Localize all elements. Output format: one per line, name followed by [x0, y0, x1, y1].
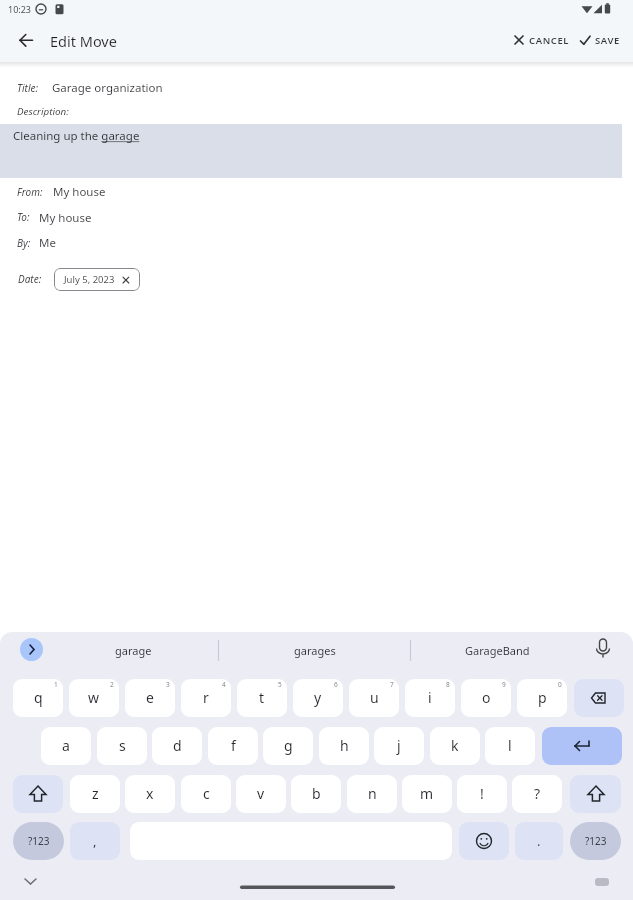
staticText: ?123 [585, 834, 607, 848]
staticText: q [34, 688, 43, 707]
staticText: d [173, 736, 182, 755]
button[interactable]: v [236, 775, 286, 813]
staticText: u [370, 688, 379, 707]
button[interactable]: h [319, 727, 369, 765]
button[interactable]: a [41, 727, 91, 765]
staticText: f [231, 736, 236, 755]
button[interactable]: j [374, 727, 424, 765]
button[interactable] [570, 775, 621, 813]
staticText: a [62, 736, 70, 755]
staticText: t [259, 688, 265, 707]
button[interactable]: g [263, 727, 313, 765]
staticText: 2 [110, 680, 114, 689]
staticText: z [92, 784, 99, 803]
staticText: v [257, 784, 265, 803]
staticText: 8 [446, 680, 450, 689]
staticText: r [203, 688, 209, 707]
staticText: b [312, 784, 321, 803]
button[interactable]: x [125, 775, 175, 813]
button[interactable]: ? [512, 775, 562, 813]
staticText: ! [480, 784, 484, 803]
button[interactable]: w [69, 679, 119, 717]
staticText: GarageBand [465, 643, 530, 658]
button[interactable]: July 5, 2023 [54, 268, 140, 291]
staticText: Description: [17, 105, 69, 118]
button[interactable] [20, 638, 43, 661]
button[interactable]: n [347, 775, 397, 813]
staticText: h [340, 736, 349, 755]
button[interactable]: GarageBand [447, 636, 547, 664]
button[interactable] [574, 679, 624, 717]
button[interactable]: ?123 [570, 822, 621, 860]
button[interactable]: SAVE [578, 28, 620, 52]
staticText: o [482, 688, 491, 707]
button[interactable] [542, 727, 622, 765]
staticText: , [93, 832, 97, 850]
staticText: w [88, 688, 100, 707]
staticText: My house [53, 184, 106, 200]
staticText: 4 [222, 680, 226, 689]
button[interactable]: , [70, 822, 120, 860]
staticText: i [428, 688, 432, 707]
staticText: My house [39, 210, 92, 226]
staticText: 9 [502, 680, 506, 689]
button[interactable]: . [515, 822, 563, 860]
staticText: g [284, 736, 293, 755]
staticText: July 5, 2023 [64, 273, 115, 286]
staticText: j [397, 736, 401, 755]
button[interactable] [8, 26, 42, 56]
staticText: Date: [18, 272, 42, 286]
button[interactable]: CANCEL [512, 28, 570, 52]
button[interactable]: garage [83, 636, 183, 664]
staticText: CANCEL [529, 34, 570, 47]
staticText: s [119, 736, 126, 755]
button[interactable]: o [461, 679, 511, 717]
button[interactable]: z [70, 775, 120, 813]
staticText: ? [534, 784, 541, 803]
button[interactable]: m [402, 775, 452, 813]
button[interactable]: garages [265, 636, 365, 664]
staticText: p [538, 688, 547, 707]
button[interactable]: ?123 [13, 822, 64, 860]
button[interactable]: f [208, 727, 258, 765]
staticText: Edit Move [50, 31, 117, 51]
staticText: m [420, 784, 434, 803]
button[interactable]: s [97, 727, 147, 765]
staticText: . [537, 832, 541, 850]
button[interactable]: d [152, 727, 202, 765]
staticText: k [451, 736, 459, 755]
button[interactable]: ! [457, 775, 507, 813]
staticText: garages [294, 643, 336, 658]
button[interactable] [459, 822, 509, 860]
staticText: Me [39, 235, 56, 251]
button[interactable]: i [405, 679, 455, 717]
staticText: x [146, 784, 154, 803]
button[interactable] [13, 775, 63, 813]
staticText: From: [17, 185, 43, 199]
button[interactable]: q [13, 679, 63, 717]
staticText: l [508, 736, 512, 755]
staticText: SAVE [595, 34, 620, 47]
button[interactable]: p [517, 679, 567, 717]
button[interactable]: k [430, 727, 480, 765]
staticText: e [146, 688, 154, 707]
button[interactable]: u [349, 679, 399, 717]
staticText: 10:23 [8, 3, 32, 15]
button[interactable]: r [181, 679, 231, 717]
staticText: Cleaning up the garage [13, 128, 140, 144]
button[interactable]: c [181, 775, 231, 813]
staticText: ?123 [28, 834, 50, 848]
button[interactable]: b [291, 775, 341, 813]
staticText: y [314, 688, 322, 707]
staticText: garage [115, 643, 152, 658]
button[interactable]: e [125, 679, 175, 717]
staticText: 5 [278, 680, 282, 689]
button[interactable]: Cleaning up the garage [0, 124, 622, 178]
staticText: Garage organization [52, 80, 163, 96]
staticText: 7 [390, 680, 394, 689]
staticText: 3 [166, 680, 170, 689]
button[interactable]: y [293, 679, 343, 717]
button[interactable]: l [485, 727, 535, 765]
button[interactable]: t [237, 679, 287, 717]
